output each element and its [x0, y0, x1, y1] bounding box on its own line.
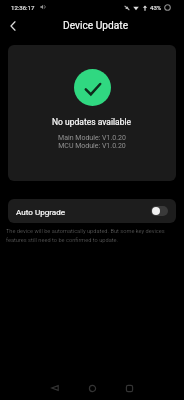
button[interactable]: Back — [0, 13, 26, 39]
staticText: 12:36:17 — [11, 4, 35, 11]
staticText: Device Update — [63, 20, 129, 32]
button[interactable]: Auto Upgrade — [8, 199, 176, 223]
staticText: No updates available — [52, 117, 132, 127]
staticText: Main Module: V1.0.20 MCU Module: V1.0.20 — [58, 134, 126, 150]
button[interactable]: Home — [83, 379, 102, 398]
button[interactable]: Back — [46, 379, 65, 398]
staticText: The device will be automatically updated… — [6, 228, 176, 244]
staticText: 43% — [150, 4, 162, 11]
button[interactable]: Recents — [120, 379, 139, 398]
staticText: Auto Upgrade — [16, 207, 66, 216]
